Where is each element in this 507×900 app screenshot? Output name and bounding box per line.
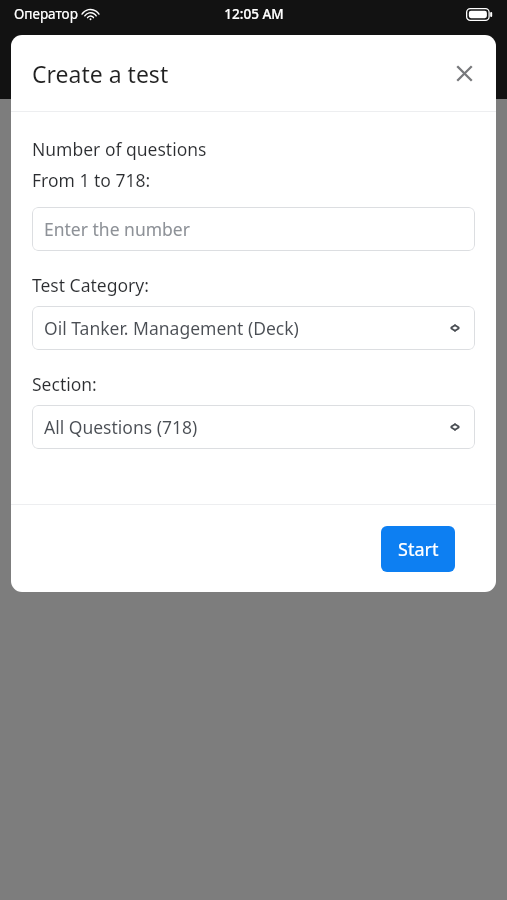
staticText: 12:05 AM bbox=[224, 5, 284, 23]
staticText: Test Category: bbox=[32, 273, 149, 297]
button[interactable]: Enter the number bbox=[32, 207, 475, 251]
staticText: Create a test bbox=[32, 58, 169, 89]
button[interactable]: Oil Tanker. Management (Deck) bbox=[32, 306, 475, 350]
staticText: Оператор bbox=[14, 5, 78, 23]
button[interactable]: Close bbox=[445, 54, 483, 92]
staticText: Oil Tanker. Management (Deck) bbox=[44, 316, 299, 340]
staticText: Start bbox=[398, 537, 439, 562]
staticText: All Questions (718) bbox=[44, 415, 198, 439]
staticText: Section: bbox=[32, 372, 97, 396]
button[interactable]: Start bbox=[381, 526, 455, 572]
staticText: Enter the number bbox=[44, 217, 190, 241]
staticText: Number of questions bbox=[32, 137, 207, 161]
button[interactable]: All Questions (718) bbox=[32, 405, 475, 449]
staticText: From 1 to 718: bbox=[32, 168, 151, 192]
